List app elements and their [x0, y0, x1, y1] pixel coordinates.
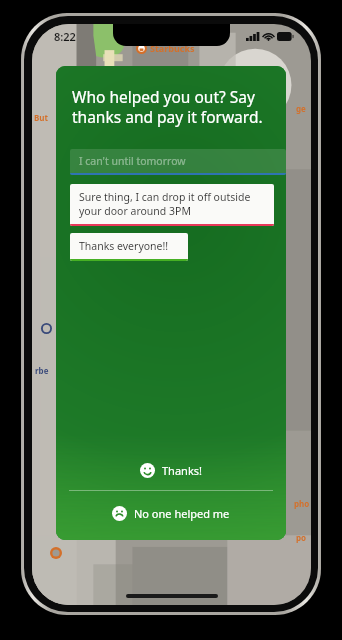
staticText: But	[34, 112, 48, 123]
staticText: rbe	[35, 365, 49, 376]
button[interactable]: I can't until tomorrow	[70, 149, 286, 175]
other: Home	[126, 594, 218, 598]
button[interactable]: Thanks everyone!!	[70, 233, 188, 261]
button[interactable]: No one helped me	[56, 491, 286, 535]
staticText: pho	[294, 498, 310, 509]
staticText: ge	[296, 103, 306, 114]
staticText: Thanks!	[162, 463, 202, 478]
staticText: Thanks everyone!!	[79, 239, 169, 253]
staticText: Who helped you out? Say thanks and pay i…	[72, 86, 263, 128]
staticText: I can't until tomorrow	[79, 154, 186, 168]
staticText: 8:22	[54, 29, 76, 44]
button[interactable]: Sure thing, I can drop it off outside yo…	[70, 184, 274, 226]
staticText: No one helped me	[134, 506, 230, 521]
staticText: Starbucks	[150, 42, 195, 54]
staticText: po	[296, 532, 307, 543]
button[interactable]: Thanks!	[56, 450, 286, 490]
staticText: Sure thing, I can drop it off outside yo…	[79, 190, 251, 218]
